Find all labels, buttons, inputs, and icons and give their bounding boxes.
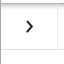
- button[interactable]: Next: [0, 0, 64, 64]
